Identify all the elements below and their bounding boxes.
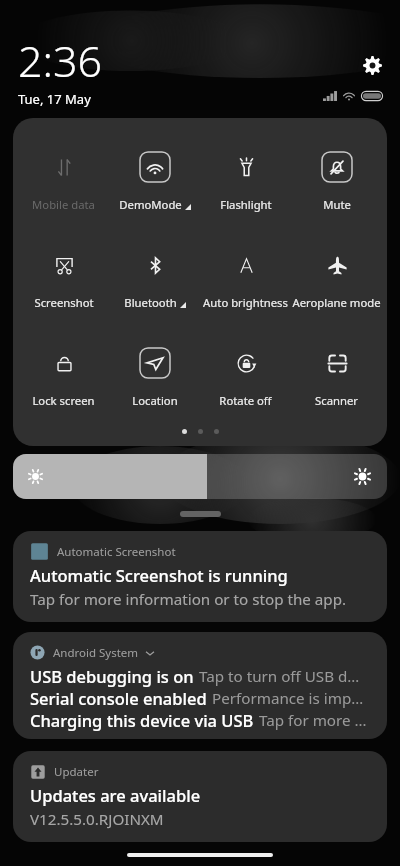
staticText: Rotate off bbox=[219, 393, 272, 408]
staticText: Updates are available bbox=[30, 784, 201, 806]
staticText: Charging this device via USB bbox=[30, 709, 254, 731]
staticText: Performance is impact… bbox=[212, 688, 367, 709]
staticText: Bluetooth bbox=[124, 295, 177, 310]
button[interactable]: Mobile data bbox=[18, 152, 109, 212]
staticText: DemoMode bbox=[119, 197, 182, 212]
button[interactable]: DemoMode bbox=[109, 152, 200, 212]
button[interactable]: Android System bbox=[13, 632, 387, 739]
button[interactable]: Aeroplane mode bbox=[291, 250, 382, 310]
button[interactable]: Location bbox=[109, 348, 200, 408]
staticText: USB debugging is on bbox=[30, 665, 194, 687]
staticText: Scanner bbox=[315, 393, 358, 408]
button[interactable]: Bluetooth bbox=[109, 250, 200, 310]
button[interactable] bbox=[13, 454, 387, 499]
button[interactable]: Automatic Screenshot bbox=[13, 531, 387, 622]
button[interactable]: Rotate off bbox=[200, 348, 291, 408]
button[interactable]: Updater bbox=[13, 751, 387, 842]
staticText: Screenshot bbox=[34, 295, 94, 310]
staticText: Lock screen bbox=[32, 393, 95, 408]
staticText: Updater bbox=[54, 764, 99, 780]
staticText: Aeroplane mode bbox=[292, 295, 381, 310]
button[interactable]: Mute bbox=[291, 152, 382, 212]
staticText: Mobile data bbox=[32, 197, 95, 212]
button[interactable] bbox=[180, 511, 221, 517]
staticText: Android System bbox=[53, 645, 139, 661]
staticText: Tap to turn off USB debug… bbox=[199, 666, 367, 687]
button[interactable]: Screenshot bbox=[18, 250, 109, 310]
staticText: Automatic Screenshot is running bbox=[30, 564, 288, 586]
staticText: Serial console enabled bbox=[30, 687, 207, 709]
staticText: Tap for more opt… bbox=[259, 710, 367, 731]
button[interactable]: Scanner bbox=[291, 348, 382, 408]
staticText: Flashlight bbox=[220, 197, 272, 212]
staticText: Tue, 17 May bbox=[18, 90, 91, 108]
button[interactable]: Flashlight bbox=[200, 152, 291, 212]
staticText: Tap for more information or to stop the … bbox=[30, 589, 347, 610]
staticText: Mute bbox=[323, 197, 351, 212]
button[interactable]: Settings bbox=[355, 48, 389, 82]
staticText: Auto brightness bbox=[203, 295, 288, 310]
button[interactable]: Auto brightness bbox=[200, 250, 291, 310]
staticText: Automatic Screenshot bbox=[57, 544, 176, 560]
staticText: V12.5.5.0.RJOINXM bbox=[30, 809, 164, 830]
staticText: Location bbox=[132, 393, 178, 408]
button[interactable]: Lock screen bbox=[18, 348, 109, 408]
staticText: 2:36 bbox=[18, 31, 103, 90]
